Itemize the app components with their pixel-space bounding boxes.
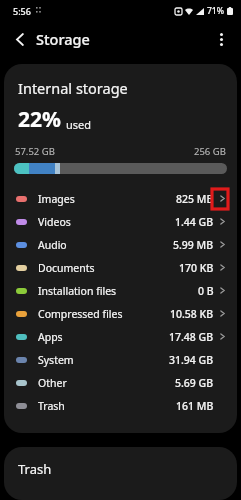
button[interactable]: More options: [207, 25, 235, 53]
button[interactable]: Audio: [4, 233, 237, 256]
staticText: Videos: [38, 215, 71, 229]
staticText: 1.44 GB: [175, 215, 214, 229]
staticText: 17.48 GB: [169, 330, 214, 344]
button[interactable]: Videos: [4, 210, 237, 233]
staticText: 31.94 GB: [169, 353, 214, 367]
staticText: 5:56: [13, 5, 31, 17]
button[interactable]: Compressed files: [4, 302, 237, 325]
staticText: 5.99 MB: [173, 238, 214, 252]
button[interactable]: System: [4, 348, 237, 371]
staticText: Storage: [36, 29, 90, 49]
button[interactable]: Trash: [4, 394, 237, 417]
staticText: 10.58 KB: [170, 307, 214, 321]
staticText: 22%: [18, 105, 61, 134]
staticText: 161 MB: [176, 399, 214, 413]
staticText: Other: [38, 376, 67, 390]
staticText: 0 B: [198, 284, 214, 298]
staticText: 5.69 GB: [175, 376, 214, 390]
staticText: 825 MB: [176, 192, 214, 206]
staticText: Internal storage: [18, 78, 128, 98]
staticText: System: [38, 353, 74, 367]
button[interactable]: Back: [6, 25, 34, 53]
staticText: Trash: [38, 399, 65, 413]
staticText: Trash: [18, 460, 52, 478]
staticText: 256 GB: [194, 145, 226, 158]
button[interactable]: Other: [4, 371, 237, 394]
button[interactable]: Trash: [4, 447, 237, 500]
button[interactable]: Apps: [4, 325, 237, 348]
button[interactable]: Installation files: [4, 279, 237, 302]
staticText: Documents: [38, 261, 95, 275]
staticText: 57.52 GB: [15, 145, 55, 158]
staticText: Audio: [38, 238, 67, 252]
staticText: Apps: [38, 330, 63, 344]
button[interactable]: Images: [4, 187, 237, 210]
staticText: used: [66, 117, 92, 132]
staticText: Compressed files: [38, 307, 123, 321]
staticText: 71%: [207, 5, 224, 17]
staticText: 170 KB: [179, 261, 214, 275]
button[interactable]: Documents: [4, 256, 237, 279]
staticText: Installation files: [38, 284, 117, 298]
staticText: Images: [38, 192, 75, 206]
